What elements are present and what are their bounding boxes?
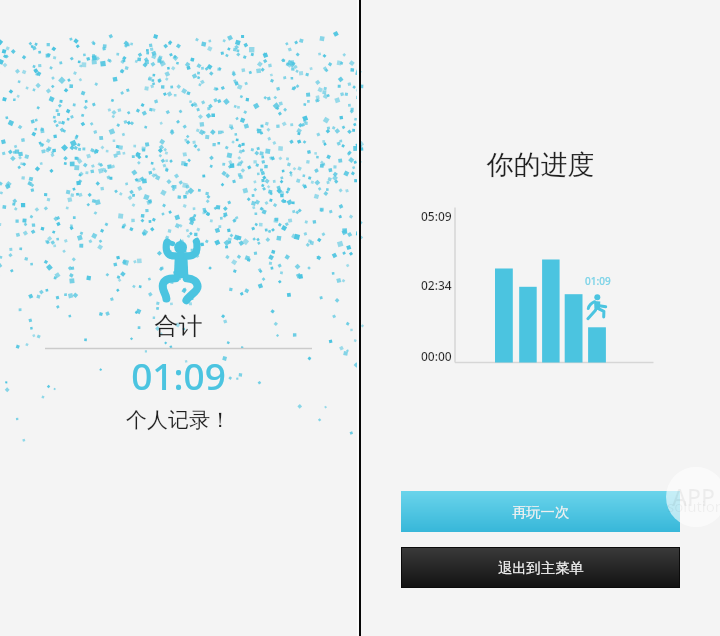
staticText: 合计 (0, 311, 357, 341)
staticText: 01:09 (585, 274, 611, 288)
staticText: 再玩一次 (512, 503, 570, 521)
other: Celebration (160, 236, 202, 304)
staticText: 00:00 (421, 348, 452, 364)
staticText: 你的进度 (361, 148, 720, 182)
staticText: 05:09 (421, 208, 452, 224)
staticText: 退出到主菜单 (498, 559, 584, 577)
staticText: 02:34 (421, 277, 452, 293)
staticText: 个人记录！ (0, 407, 357, 433)
staticText: APP (672, 481, 716, 512)
button[interactable]: 退出到主菜单 (401, 547, 680, 588)
staticText: 01:09 (0, 350, 357, 400)
other: Your latest run (586, 293, 608, 322)
button[interactable]: 再玩一次 (401, 491, 680, 532)
staticText: solution (667, 496, 720, 516)
